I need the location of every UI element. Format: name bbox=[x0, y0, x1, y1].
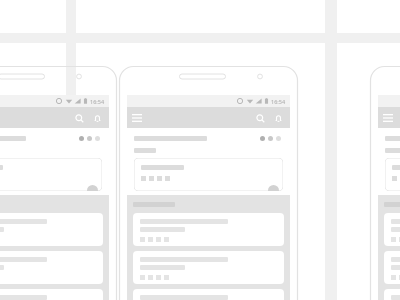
button[interactable]: Menu bbox=[378, 108, 398, 128]
button[interactable] bbox=[384, 213, 400, 246]
button[interactable] bbox=[133, 213, 284, 246]
button[interactable] bbox=[384, 251, 400, 284]
button[interactable]: Add bbox=[268, 185, 279, 191]
button[interactable]: Notifications bbox=[269, 109, 287, 127]
button[interactable]: Add bbox=[378, 128, 400, 195]
button[interactable]: Search bbox=[251, 109, 269, 127]
staticText: 16:54 bbox=[90, 98, 105, 105]
button[interactable]: Notifications bbox=[88, 109, 106, 127]
button[interactable] bbox=[0, 251, 103, 284]
button[interactable]: Add bbox=[385, 158, 400, 191]
staticText: 16:54 bbox=[271, 98, 286, 105]
button[interactable] bbox=[384, 289, 400, 300]
button[interactable]: Add bbox=[87, 185, 98, 191]
button[interactable] bbox=[0, 213, 103, 246]
button[interactable] bbox=[133, 251, 284, 284]
button[interactable]: Search bbox=[70, 109, 88, 127]
button[interactable]: Add bbox=[127, 128, 290, 195]
button[interactable] bbox=[133, 289, 284, 300]
button[interactable]: Add bbox=[134, 158, 283, 191]
button[interactable]: Menu bbox=[127, 108, 147, 128]
button[interactable]: Add bbox=[0, 158, 102, 191]
button[interactable] bbox=[0, 289, 103, 300]
button[interactable]: Add bbox=[0, 128, 109, 195]
